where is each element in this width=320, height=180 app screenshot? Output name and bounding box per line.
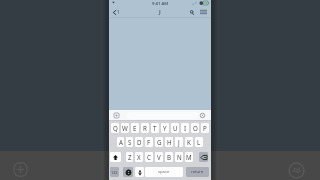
button[interactable]: X <box>135 152 143 162</box>
button[interactable]: E <box>131 123 139 133</box>
staticText: O <box>193 124 198 132</box>
staticText: K <box>187 138 191 146</box>
button[interactable]: N <box>175 152 183 162</box>
button[interactable]: Search <box>188 9 195 16</box>
staticText: Q <box>113 124 118 132</box>
button[interactable]: Add <box>12 161 29 178</box>
staticText: J <box>159 8 161 16</box>
staticText: Y <box>163 124 167 132</box>
button[interactable]: Dictate <box>135 167 144 177</box>
button[interactable]: L <box>195 137 203 147</box>
button[interactable]: O <box>191 123 199 133</box>
button[interactable]: 1 <box>113 9 120 15</box>
staticText: F <box>147 138 151 146</box>
staticText: S <box>128 138 132 146</box>
staticText: H <box>167 138 172 146</box>
button[interactable]: D <box>135 137 143 147</box>
staticText: W <box>122 124 128 132</box>
staticText: I <box>184 124 187 132</box>
staticText: B <box>167 153 172 161</box>
button[interactable]: space <box>145 167 183 177</box>
button[interactable]: B <box>165 152 173 162</box>
staticText: J <box>178 138 180 146</box>
staticText: E <box>133 124 137 132</box>
button[interactable]: J <box>175 137 183 147</box>
staticText: Z <box>128 153 132 161</box>
button[interactable]: W <box>121 123 129 133</box>
staticText: P <box>203 124 207 132</box>
button[interactable]: Attach photo <box>113 112 120 119</box>
staticText: T <box>153 124 157 132</box>
button[interactable]: Q <box>111 123 119 133</box>
button[interactable]: Z <box>126 152 133 162</box>
button[interactable]: F <box>145 137 153 147</box>
staticText: D <box>137 138 142 146</box>
button[interactable]: U <box>171 123 179 133</box>
button[interactable]: Menu <box>199 8 208 16</box>
button[interactable]: 123 <box>110 167 119 177</box>
staticText: L <box>197 138 201 146</box>
button[interactable]: Delete <box>199 152 208 162</box>
button[interactable]: I <box>181 123 189 133</box>
staticText: return <box>191 169 204 175</box>
button[interactable]: Next keyboard <box>123 167 133 177</box>
button[interactable]: Close <box>199 112 206 119</box>
button[interactable]: G <box>155 137 163 147</box>
button[interactable]: P <box>201 123 209 133</box>
staticText: 9:41 AM <box>152 1 169 7</box>
button[interactable]: T <box>151 123 159 133</box>
staticText: U <box>173 124 178 132</box>
button[interactable]: H <box>165 137 173 147</box>
staticText: C <box>147 153 151 161</box>
button[interactable]: S <box>126 137 133 147</box>
staticText: R <box>143 124 147 132</box>
button[interactable]: K <box>185 137 193 147</box>
staticText: A <box>119 138 123 146</box>
button[interactable]: M <box>185 152 193 162</box>
staticText: 123 <box>111 170 118 175</box>
staticText: space <box>158 169 170 175</box>
staticText: M <box>186 153 192 161</box>
button[interactable]: return <box>186 167 209 177</box>
button[interactable]: A <box>117 137 124 147</box>
staticText: 1 <box>117 9 120 15</box>
button[interactable]: C <box>145 152 153 162</box>
button[interactable]: Effects <box>288 162 305 179</box>
button[interactable]: Shift <box>110 152 121 162</box>
button[interactable]: Y <box>161 123 169 133</box>
staticText: G <box>157 138 162 146</box>
staticText: V <box>157 153 161 161</box>
staticText: X <box>137 153 141 161</box>
button[interactable]: V <box>155 152 163 162</box>
staticText: N <box>177 153 182 161</box>
button[interactable]: R <box>141 123 149 133</box>
